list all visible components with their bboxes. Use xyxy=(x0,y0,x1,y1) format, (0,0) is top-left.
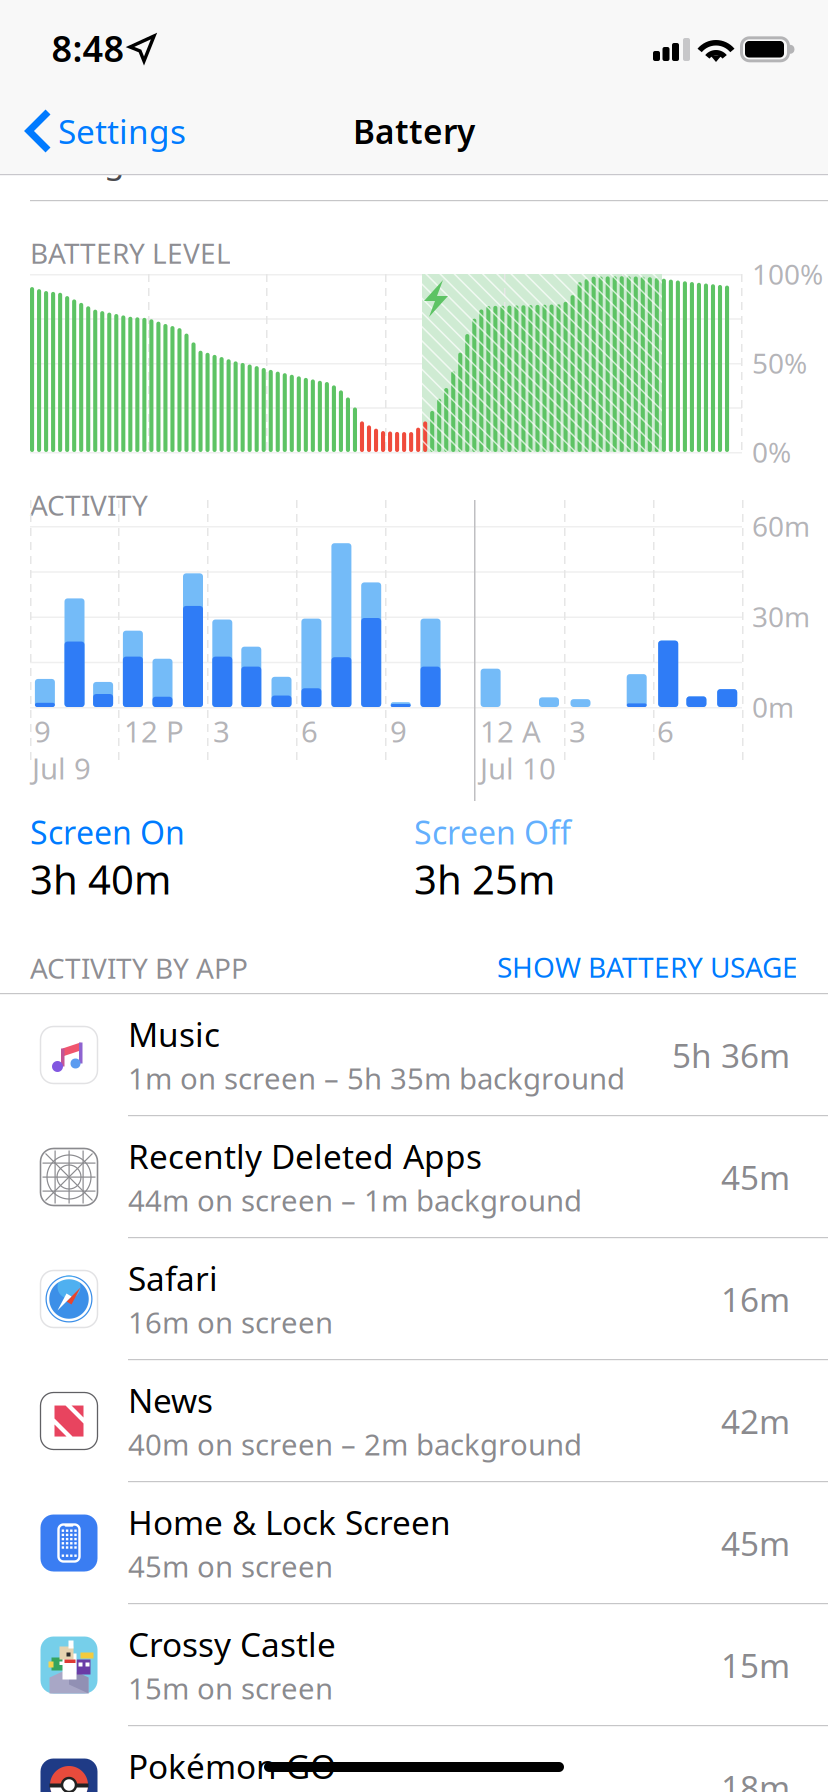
staticText: 40m on screen – 2m background xyxy=(128,1424,582,1463)
staticText: 6 xyxy=(657,711,674,750)
button[interactable]: Music xyxy=(0,994,828,1116)
staticText: 3 xyxy=(569,711,586,750)
button[interactable]: Recently Deleted Apps xyxy=(0,1116,828,1238)
staticText: 45m xyxy=(721,1521,790,1565)
staticText: 16m on screen xyxy=(128,1302,333,1341)
staticText: ACTIVITY BY APP xyxy=(30,949,248,987)
staticText: 30m xyxy=(752,598,810,635)
staticText: Battery xyxy=(353,109,475,153)
staticText: 15m xyxy=(721,1643,790,1687)
staticText: 45m xyxy=(721,1155,790,1199)
staticText: News xyxy=(128,1378,213,1422)
button[interactable]: SHOW BATTERY USAGE xyxy=(438,939,798,995)
staticText: Jul 10 xyxy=(480,748,556,787)
staticText: 5h 36m xyxy=(672,1033,790,1077)
staticText: Safari xyxy=(128,1256,218,1300)
staticText: 9 xyxy=(34,711,51,750)
staticText: 15m on screen xyxy=(128,1668,333,1707)
staticText: 3 xyxy=(213,711,230,750)
staticText: Screen On xyxy=(30,811,185,853)
button[interactable]: Crossy Castle xyxy=(0,1604,828,1726)
staticText: 1m on screen – 5h 35m background xyxy=(128,1058,625,1097)
staticText: Charge xyxy=(30,138,144,182)
staticText: SHOW BATTERY USAGE xyxy=(497,948,798,986)
staticText: Music xyxy=(128,1012,220,1056)
staticText: 16m xyxy=(721,1277,790,1321)
staticText: 42m xyxy=(721,1399,790,1443)
staticText: Settings xyxy=(58,109,186,153)
staticText: 12 A xyxy=(480,711,541,750)
staticText: Pokémon GO xyxy=(128,1744,336,1788)
staticText: Home & Lock Screen xyxy=(128,1500,451,1544)
button[interactable]: Home & Lock Screen xyxy=(0,1482,828,1604)
staticText: 0m xyxy=(752,688,794,726)
staticText: ACTIVITY xyxy=(30,486,148,524)
staticText: 60m xyxy=(752,507,810,545)
staticText: 8:48 xyxy=(51,24,124,72)
button[interactable]: News xyxy=(0,1360,828,1482)
staticText: 100% xyxy=(752,255,823,293)
staticText: 50% xyxy=(752,344,807,382)
staticText: 44m on screen – 1m background xyxy=(128,1180,582,1219)
button[interactable]: Settings xyxy=(0,88,230,174)
staticText: 3h 25m xyxy=(414,852,555,905)
staticText: Jul 9 xyxy=(32,748,91,787)
staticText: Screen Off xyxy=(414,811,571,853)
staticText: Recently Deleted Apps xyxy=(128,1134,482,1178)
button[interactable]: Pokémon GO xyxy=(0,1726,828,1792)
staticText: 9 xyxy=(390,711,407,750)
staticText: 0% xyxy=(752,433,791,471)
staticText: BATTERY LEVEL xyxy=(30,234,231,272)
staticText: 18m xyxy=(721,1765,790,1792)
staticText: 6 xyxy=(301,711,318,750)
staticText: 3h 40m xyxy=(30,852,171,905)
button[interactable]: Safari xyxy=(0,1238,828,1360)
staticText: Crossy Castle xyxy=(128,1622,336,1666)
staticText: 12 P xyxy=(124,711,184,750)
staticText: 45m on screen xyxy=(128,1546,333,1585)
